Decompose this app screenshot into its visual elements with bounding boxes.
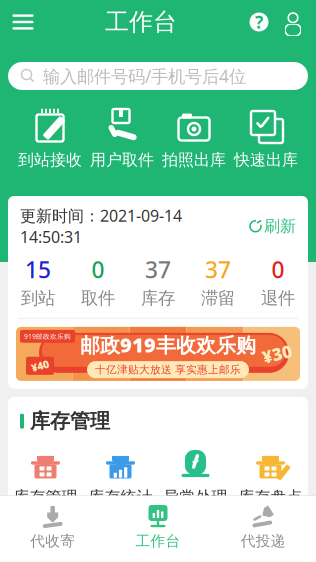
staticText: 库存盘点 — [238, 487, 302, 507]
button[interactable]: 输入邮件号码/手机号后4位 — [8, 62, 308, 90]
button[interactable]: 0 — [248, 254, 308, 309]
button[interactable]: 菜单 — [10, 9, 36, 35]
staticText: 到站 — [21, 288, 55, 309]
staticText: 输入邮件号码/手机号后4位 — [43, 64, 246, 87]
staticText: 取件 — [81, 288, 115, 309]
button[interactable]: 37 — [188, 254, 248, 309]
staticText: 到站接收 — [18, 150, 82, 170]
button[interactable]: 库存管理 — [8, 447, 83, 507]
staticText: ¥30 — [262, 342, 292, 365]
staticText: 滞留 — [201, 288, 235, 309]
staticText: 0 — [91, 254, 104, 285]
staticText: 库存管理 — [30, 409, 110, 433]
button[interactable]: 快速出库 — [230, 106, 302, 172]
staticText: 919邮政欢乐购 — [24, 332, 71, 341]
staticText: 15 — [25, 254, 51, 285]
staticText: 异常处理 — [163, 487, 227, 507]
staticText: 代收寄 — [30, 532, 75, 550]
staticText: ¥40 — [31, 359, 49, 373]
staticText: 拍照出库 — [162, 150, 226, 170]
staticText: 快速出库 — [234, 150, 298, 170]
staticText: 库存统计 — [88, 487, 152, 507]
staticText: 37 — [205, 254, 231, 285]
staticText: 刷新 — [264, 216, 296, 236]
staticText: 库存管理 — [13, 487, 77, 507]
button[interactable]: 库存盘点 — [233, 447, 308, 507]
staticText: 邮政919丰收欢乐购 — [80, 332, 256, 358]
button[interactable]: 到站接收 — [14, 106, 86, 172]
button[interactable]: 15 — [8, 254, 68, 309]
button[interactable]: 帮助 — [246, 9, 272, 35]
staticText: 退件 — [261, 288, 295, 309]
button[interactable]: 拍照出库 — [158, 106, 230, 172]
staticText: 库存 — [141, 288, 175, 309]
staticText: 37 — [145, 254, 171, 285]
button[interactable]: 异常处理 — [158, 447, 233, 507]
button[interactable]: 用户取件 — [86, 106, 158, 172]
button[interactable]: 0 — [68, 254, 128, 309]
staticText: ? — [255, 10, 263, 33]
button[interactable]: 代收寄 — [0, 500, 105, 554]
button[interactable]: 工作台 — [105, 500, 211, 554]
button[interactable]: 代投递 — [211, 500, 316, 554]
button[interactable]: 个人中心 — [280, 9, 306, 35]
staticText: 更新时间：2021-09-14 14:50:31 — [20, 205, 182, 247]
button[interactable]: 邮政919丰收欢乐购 活动横幅 — [16, 327, 300, 381]
button[interactable]: 刷新 — [249, 216, 296, 236]
button[interactable]: 37 — [128, 254, 188, 309]
staticText: 0 — [271, 254, 284, 285]
staticText: 工作台 — [105, 7, 177, 37]
button[interactable]: 库存统计 — [83, 447, 158, 507]
staticText: 工作台 — [135, 532, 180, 550]
staticText: 十亿津贴大放送 享实惠上邮乐 — [95, 363, 241, 376]
staticText: 代投递 — [241, 532, 286, 550]
staticText: 用户取件 — [90, 150, 154, 170]
